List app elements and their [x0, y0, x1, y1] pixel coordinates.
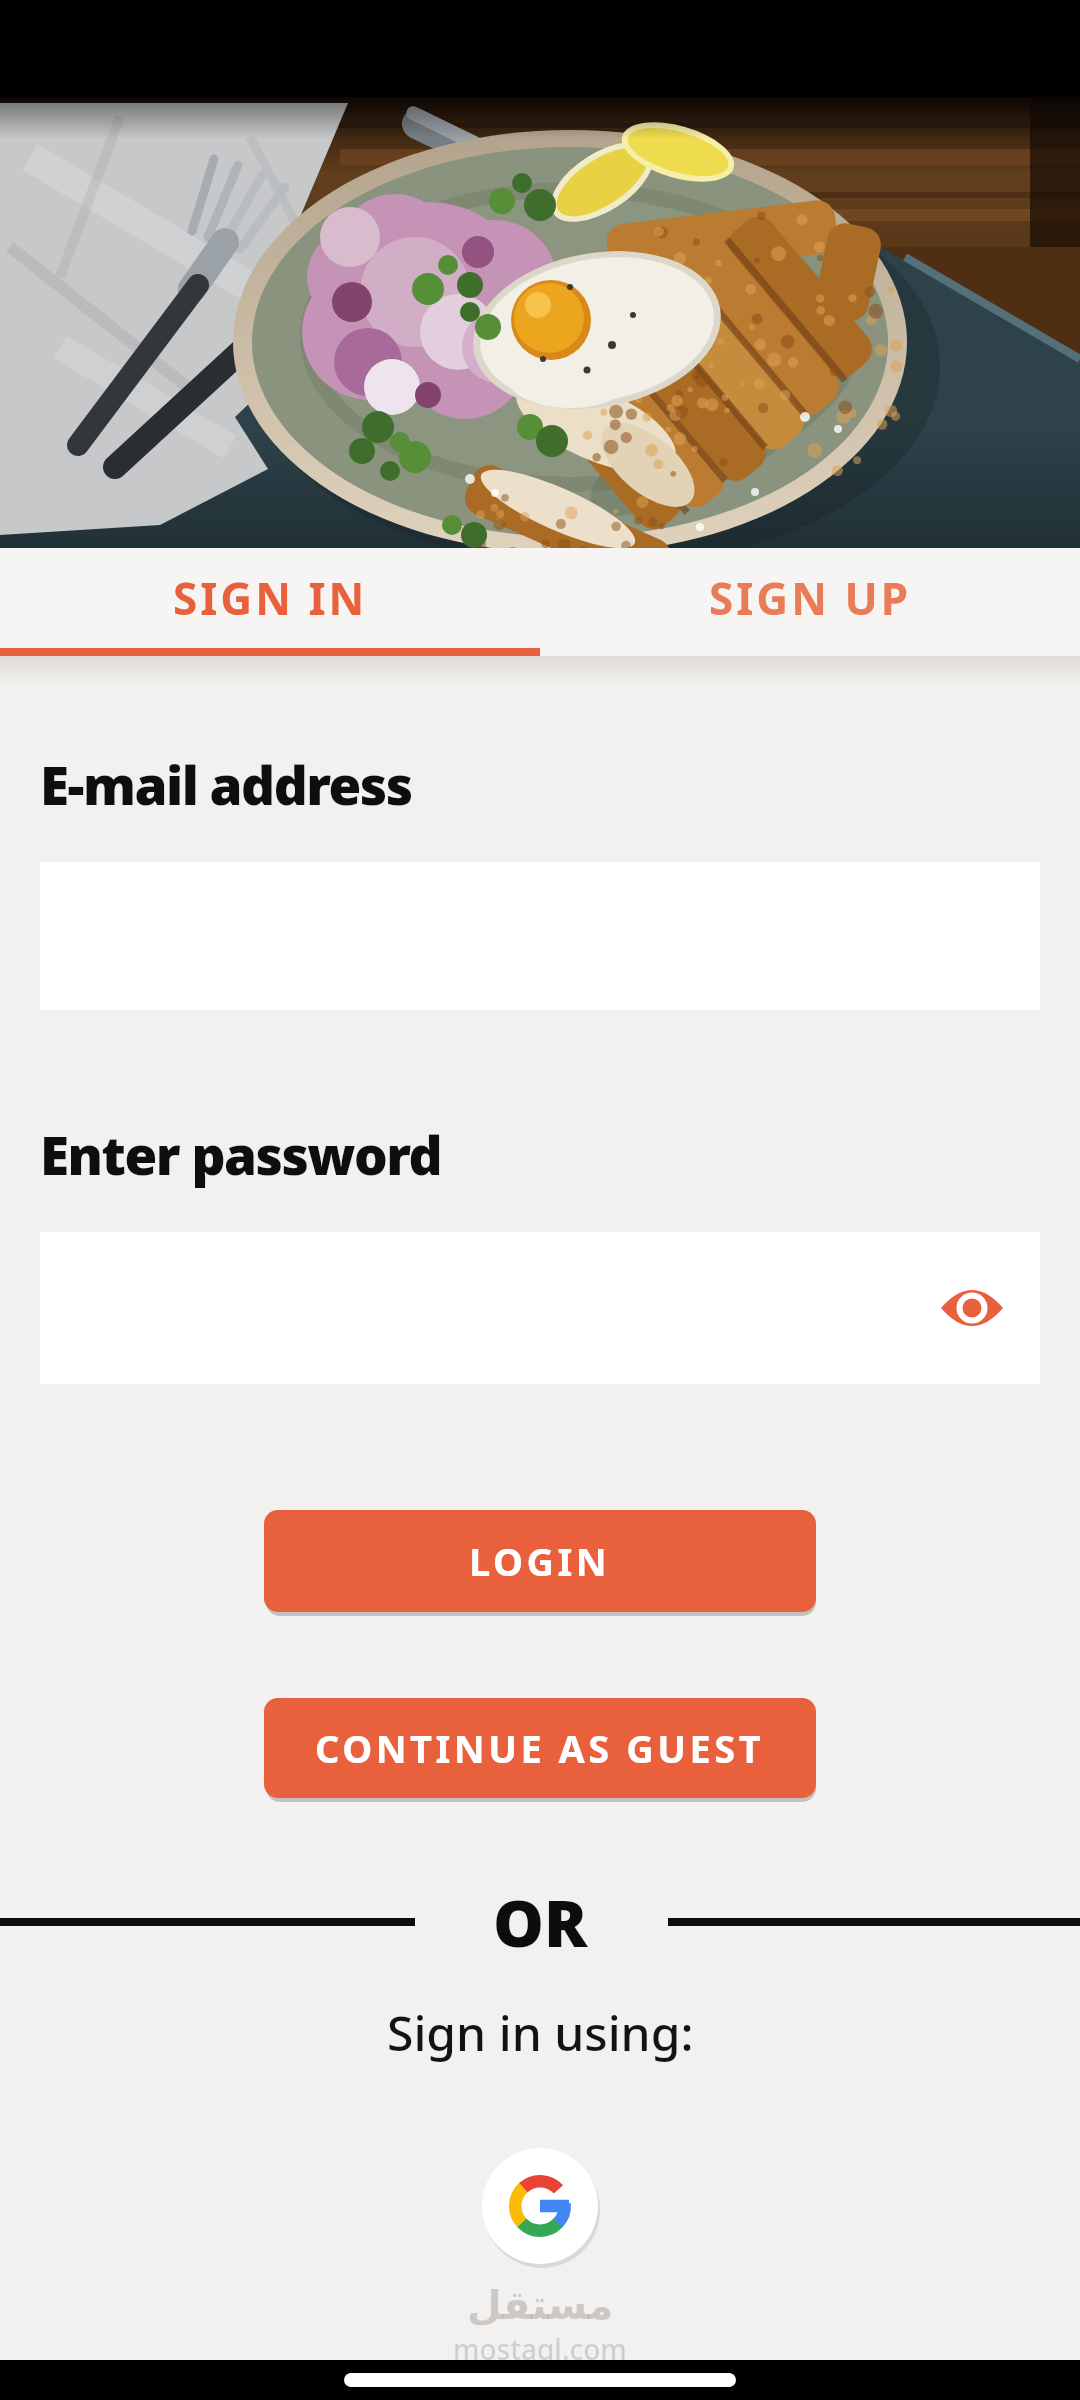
button[interactable] [482, 2148, 598, 2264]
button[interactable] [941, 1285, 1003, 1331]
button[interactable]: SIGN IN [0, 548, 540, 648]
button[interactable]: CONTINUE AS GUEST [264, 1698, 816, 1798]
staticText: CONTINUE AS GUEST [315, 1722, 765, 1774]
staticText: E-mail address [40, 748, 412, 820]
button[interactable]: LOGIN [264, 1510, 816, 1612]
staticText: SIGN IN [173, 568, 368, 628]
staticText: mostaql.com [453, 2330, 627, 2368]
staticText: Enter password [40, 1118, 442, 1190]
button[interactable] [40, 1232, 1040, 1384]
staticText: SIGN UP [709, 568, 912, 628]
staticText: LOGIN [469, 1535, 611, 1587]
staticText: OR [493, 1879, 588, 1966]
staticText: مستقل [467, 2282, 614, 2329]
button[interactable]: SIGN UP [540, 548, 1080, 648]
staticText: Sign in using: [387, 2000, 694, 2065]
